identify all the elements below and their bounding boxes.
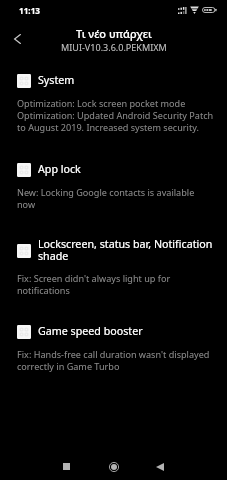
staticText: Fix: Screen didn't always light up for n…	[17, 273, 214, 297]
staticText: Τι νέο υπάρχει	[76, 26, 152, 41]
button[interactable]: Lockscreen, status bar, Notification sha…	[0, 239, 227, 297]
button[interactable]: Back	[140, 453, 179, 480]
staticText: System	[38, 75, 75, 87]
button[interactable]: App lock	[0, 163, 227, 211]
button[interactable]: Game speed booster	[0, 325, 227, 373]
button[interactable]: Home	[94, 453, 133, 480]
staticText: Optimization: Lock screen pocket mode Op…	[17, 98, 214, 134]
button[interactable]: System	[0, 74, 227, 134]
staticText: Lockscreen, status bar, Notification sha…	[38, 239, 215, 263]
staticText: Game speed booster	[38, 326, 143, 338]
button[interactable]: Back	[3, 24, 31, 54]
staticText: App lock	[38, 164, 81, 176]
button[interactable]: Recents	[47, 453, 86, 480]
staticText: 11:13	[19, 5, 41, 16]
staticText: New: Locking Google contacts is availabl…	[17, 187, 214, 211]
staticText: Fix: Hands-free call duration wasn't dis…	[17, 349, 214, 373]
staticText: MIUI-V10.3.6.0.PEKMIXM	[61, 41, 167, 53]
